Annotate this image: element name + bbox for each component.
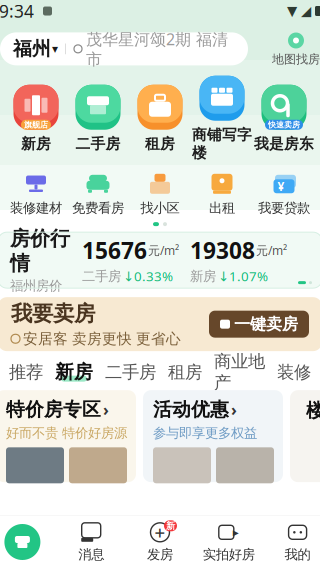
staticText: 新房 (55, 361, 93, 384)
staticText: 福州房价 (10, 277, 62, 294)
staticText: 出租 (209, 200, 235, 216)
staticText: + (154, 520, 165, 545)
staticText: 地图找房 (272, 52, 320, 67)
staticText: 楼 (306, 399, 320, 422)
button[interactable]: 首页 (0, 520, 57, 564)
staticText: 新 (166, 520, 175, 532)
button[interactable]: 商业地产 (208, 362, 271, 382)
staticText: ↓1.07% (218, 267, 268, 285)
button[interactable]: 福州 (0, 32, 248, 65)
button[interactable]: 房价行情 (0, 232, 320, 288)
staticText: 15676 (82, 235, 147, 265)
staticText: ▾ (52, 42, 58, 56)
staticText: 活动优惠 (153, 398, 229, 421)
staticText: 好而不贵 特价好房源 (6, 425, 127, 441)
button[interactable]: 推荐 (3, 362, 49, 382)
staticText: 我要贷款 (258, 200, 310, 216)
staticText: 9:34 (0, 0, 34, 22)
button[interactable]: 快速卖房 (253, 84, 315, 153)
staticText: 装修建材 (10, 200, 62, 216)
staticText: 元/m² (148, 242, 179, 258)
staticText: 装修 (277, 361, 311, 383)
staticText: 二手房 (82, 268, 121, 284)
staticText: 茂华星河颂2期 福清市 (86, 28, 228, 69)
staticText: 我是房东 (254, 135, 314, 153)
staticText: 发房 (147, 546, 173, 563)
button[interactable]: 装修 (271, 362, 317, 382)
staticText: 租房 (168, 361, 202, 383)
button[interactable]: 旗舰店 (5, 84, 67, 153)
button[interactable]: 我的 (263, 521, 320, 563)
button[interactable]: ¥ (253, 171, 315, 216)
button[interactable]: 新房 (49, 362, 99, 382)
staticText: 房价行情 (10, 226, 70, 275)
button[interactable]: 我要卖房 (0, 297, 320, 351)
staticText: 安居客 卖房更快 更省心 (23, 330, 181, 348)
staticText: 新房 (190, 268, 216, 284)
staticText: ▼ (287, 3, 297, 18)
staticText: 租房 (145, 135, 175, 153)
staticText: 旗舰店 (24, 120, 48, 130)
button[interactable]: 消息 (57, 521, 126, 563)
staticText: 实拍好房 (203, 546, 255, 563)
staticText: 消息 (78, 546, 104, 563)
staticText: ▸ (233, 525, 239, 539)
button[interactable]: 二手房 (67, 84, 129, 153)
button[interactable]: 出租 (191, 171, 253, 216)
button[interactable]: 免费看房 (67, 171, 129, 216)
button[interactable]: 二手房 (99, 362, 162, 382)
button[interactable]: 活动优惠 (143, 390, 283, 482)
staticText: 推荐 (9, 361, 43, 383)
button[interactable]: 租房 (129, 84, 191, 153)
staticText: 我要卖房 (11, 300, 95, 327)
staticText: 一键卖房 (234, 314, 298, 334)
button[interactable]: 租房 (162, 362, 208, 382)
staticText: 元/m² (256, 242, 287, 258)
staticText: 我的 (285, 546, 311, 563)
staticText: › (103, 399, 109, 420)
button[interactable]: ▸ (194, 521, 263, 563)
staticText: ↓0.33% (123, 267, 173, 285)
staticText: 福州 (13, 37, 51, 60)
button[interactable]: 地图找房 (272, 31, 320, 67)
staticText: 免费看房 (72, 200, 124, 216)
staticText: ◢ (301, 3, 311, 18)
staticText: 二手房 (105, 361, 156, 383)
button[interactable]: 找小区 (129, 171, 191, 216)
staticText: 二手房 (75, 135, 120, 153)
staticText: 19308 (190, 235, 255, 265)
staticText: 特价房专区 (6, 398, 101, 421)
button[interactable]: 装修建材 (5, 171, 67, 216)
button[interactable]: 商铺写字楼 (191, 75, 253, 162)
staticText: › (231, 399, 237, 420)
button[interactable]: 特价房专区 (0, 390, 136, 482)
staticText: ¥ (277, 178, 284, 194)
button[interactable]: + (126, 521, 194, 563)
staticText: 商业地产 (214, 351, 265, 393)
staticText: 新房 (21, 135, 51, 153)
staticText: 找小区 (140, 200, 179, 216)
staticText: 商铺写字楼 (192, 126, 252, 162)
staticText: 参与即享更多权益 (153, 425, 257, 441)
staticText: 快速卖房 (268, 120, 300, 130)
